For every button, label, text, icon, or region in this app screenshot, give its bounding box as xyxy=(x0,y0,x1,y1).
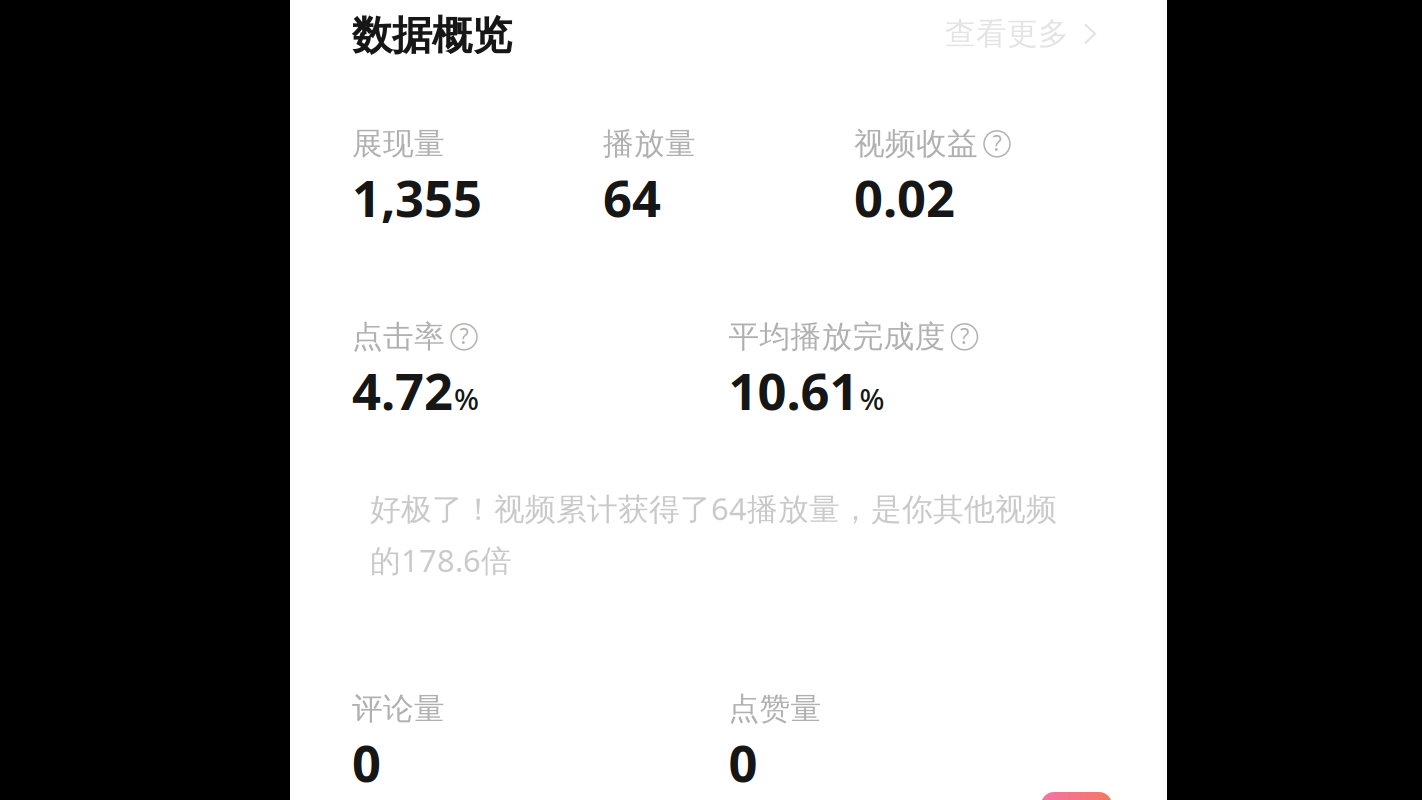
staticText: ? xyxy=(459,322,468,350)
staticText: 10.61 xyxy=(728,357,858,424)
staticText: % xyxy=(454,379,479,418)
staticText: ? xyxy=(992,129,1001,157)
button[interactable]: 视频收益说明 xyxy=(984,131,1010,157)
staticText: 展现量 xyxy=(352,125,445,163)
staticText: 点击率 xyxy=(352,318,445,356)
staticText: 64 xyxy=(603,164,661,231)
staticText: 好极了！视频累计获得了64播放量，是你其他视频的178.6倍 xyxy=(370,488,1057,580)
staticText: 数据概览 xyxy=(352,11,512,60)
staticText: 播放量 xyxy=(603,125,696,163)
staticText: 0 xyxy=(352,729,381,796)
button[interactable]: 平均播放完成度说明 xyxy=(951,324,977,350)
staticText: 0 xyxy=(728,729,757,796)
staticText: % xyxy=(859,379,884,418)
button[interactable]: 查看更多 xyxy=(945,9,1095,59)
staticText: 查看更多 xyxy=(945,15,1069,53)
button[interactable]: 点击率说明 xyxy=(451,324,477,350)
button[interactable]: 发布 xyxy=(1041,792,1112,800)
staticText: 1,355 xyxy=(352,164,482,231)
staticText: ? xyxy=(960,322,969,350)
staticText: 评论量 xyxy=(352,690,445,728)
staticText: 4.72 xyxy=(352,357,453,424)
staticText: 点赞量 xyxy=(728,690,821,728)
staticText: 平均播放完成度 xyxy=(728,318,945,356)
staticText: 0.02 xyxy=(854,164,955,231)
staticText: 视频收益 xyxy=(854,125,978,163)
